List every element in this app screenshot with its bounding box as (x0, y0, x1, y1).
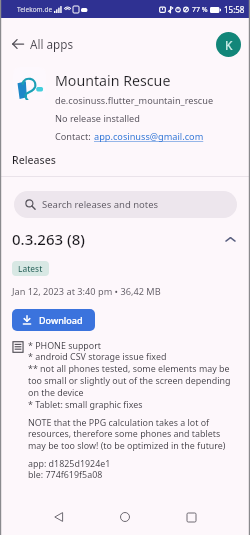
button[interactable]: Home (112, 504, 138, 530)
button[interactable]: Recents (178, 504, 204, 530)
button[interactable]: 0.3.263 (8) (12, 229, 237, 249)
staticText: de.cosinuss.flutter_mountain_rescue (55, 94, 214, 107)
staticText: All apps (30, 36, 74, 52)
staticText: * PHONE support * android CSV storage is… (28, 339, 237, 411)
staticText: Telekom.de (17, 5, 53, 14)
staticText: 77 % (192, 5, 208, 15)
button[interactable]: Account (216, 32, 241, 57)
staticText: NOTE that the PPG calculation takes a lo… (28, 416, 237, 452)
staticText: No release installed (55, 112, 140, 125)
staticText: Jan 12, 2023 at 3:40 pm • 36,42 MB (12, 285, 161, 298)
staticText: Search releases and notes (42, 198, 159, 211)
button[interactable]: Back (6, 32, 30, 56)
staticText: 0.3.263 (8) (12, 229, 85, 249)
staticText: app: d1825d1924e1 ble: 774f619f5a08 (28, 457, 111, 481)
staticText: Latest (18, 263, 43, 274)
staticText: Contact: (55, 130, 94, 143)
staticText: Releases (12, 153, 56, 167)
button[interactable]: Back (46, 504, 72, 530)
button[interactable]: Download (12, 309, 95, 331)
staticText: 15:58 (224, 4, 245, 15)
staticText: Mountain Rescue (55, 71, 171, 90)
button[interactable]: Search releases and notes (14, 191, 237, 218)
staticText: K (225, 37, 233, 53)
staticText: Download (39, 314, 83, 326)
button[interactable]: app.cosinuss@gmail.com (94, 130, 204, 143)
